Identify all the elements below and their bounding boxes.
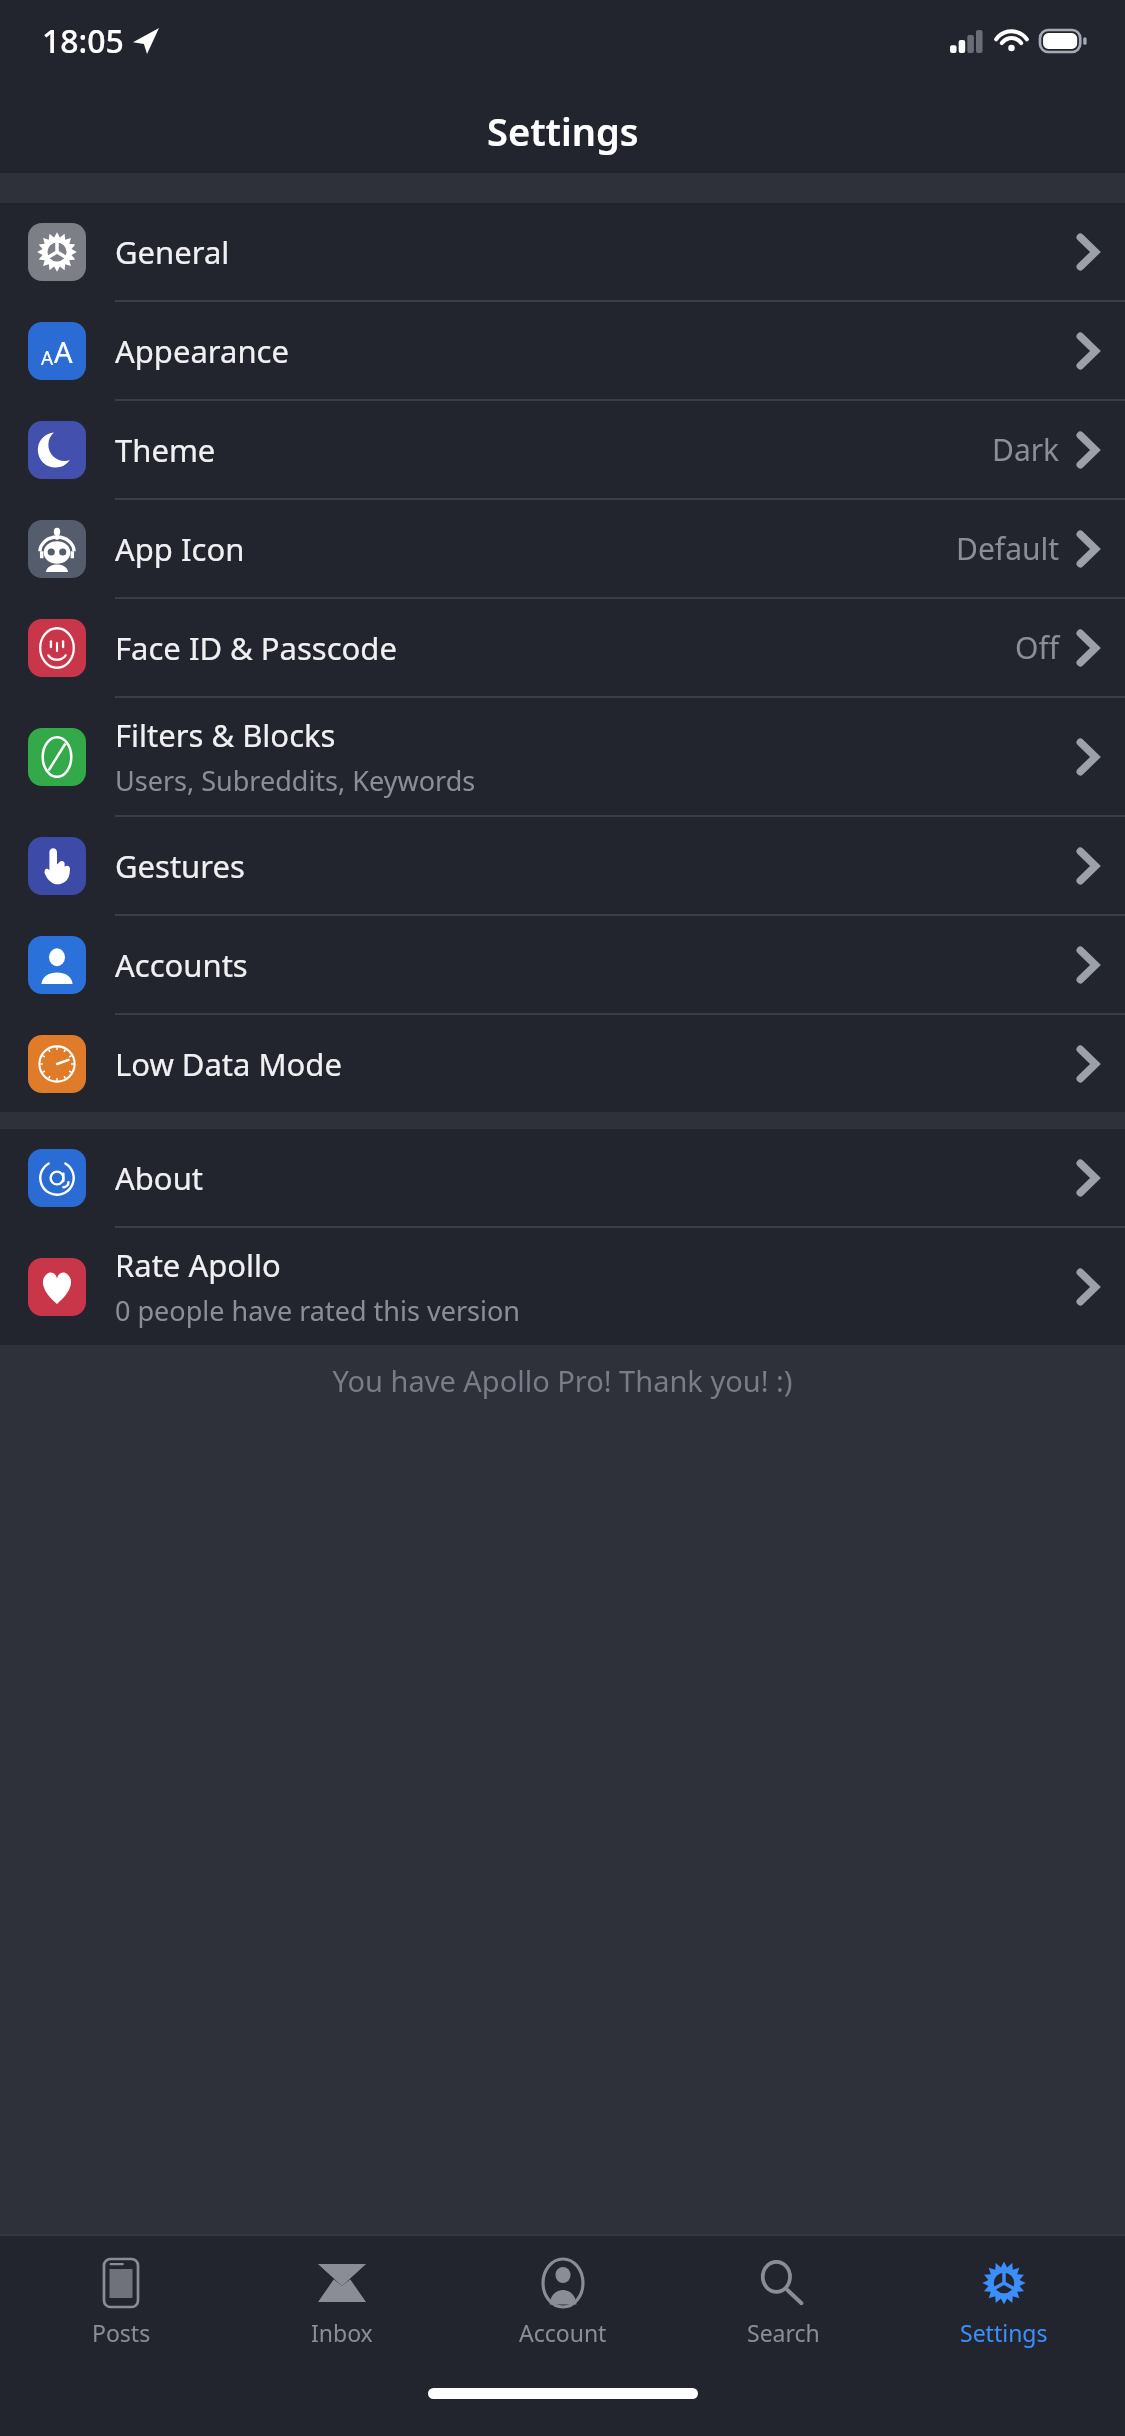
staticText: Search — [747, 2317, 820, 2348]
button[interactable]: Low Data Mode — [0, 1015, 1125, 1112]
staticText: Inbox — [311, 2317, 373, 2348]
staticText: A — [54, 332, 73, 371]
button[interactable]: Search — [683, 2236, 883, 2368]
staticText: About — [115, 1157, 203, 1199]
staticText: Settings — [487, 105, 639, 157]
staticText: Low Data Mode — [115, 1043, 342, 1085]
staticText: App Icon — [115, 528, 245, 570]
button[interactable]: Account — [463, 2236, 663, 2368]
button[interactable]: Gestures — [0, 817, 1125, 916]
staticText: Theme — [115, 429, 216, 471]
staticText: Account — [519, 2317, 607, 2348]
staticText: 18:05 — [42, 19, 124, 63]
staticText: General — [115, 231, 230, 273]
button[interactable]: About — [0, 1129, 1125, 1228]
staticText: You have Apollo Pro! Thank you! :) — [0, 1361, 1125, 1400]
staticText: Filters & Blocks — [115, 714, 336, 756]
staticText: Appearance — [115, 330, 289, 372]
staticText: A — [41, 345, 54, 371]
staticText: Rate Apollo — [115, 1244, 281, 1286]
button[interactable]: General — [0, 203, 1125, 302]
staticText: Users, Subreddits, Keywords — [115, 762, 476, 799]
button[interactable]: Rate Apollo — [0, 1228, 1125, 1345]
button[interactable]: Face ID & Passcode — [0, 599, 1125, 698]
button[interactable]: Posts — [21, 2236, 221, 2368]
staticText: Dark — [992, 429, 1060, 470]
staticText: 0 people have rated this version — [115, 1292, 520, 1329]
staticText: Accounts — [115, 944, 248, 986]
button[interactable]: Theme — [0, 401, 1125, 500]
button[interactable]: App Icon — [0, 500, 1125, 599]
staticText: Gestures — [115, 845, 245, 887]
button[interactable]: Settings — [904, 2236, 1104, 2368]
button[interactable]: A — [0, 302, 1125, 401]
button[interactable]: Inbox — [242, 2236, 442, 2368]
staticText: Settings — [960, 2317, 1048, 2348]
button[interactable]: Filters & Blocks — [0, 698, 1125, 817]
staticText: Posts — [92, 2317, 151, 2348]
staticText: Default — [956, 528, 1060, 569]
button[interactable]: Accounts — [0, 916, 1125, 1015]
staticText: Face ID & Passcode — [115, 627, 397, 669]
staticText: Off — [1015, 627, 1060, 668]
